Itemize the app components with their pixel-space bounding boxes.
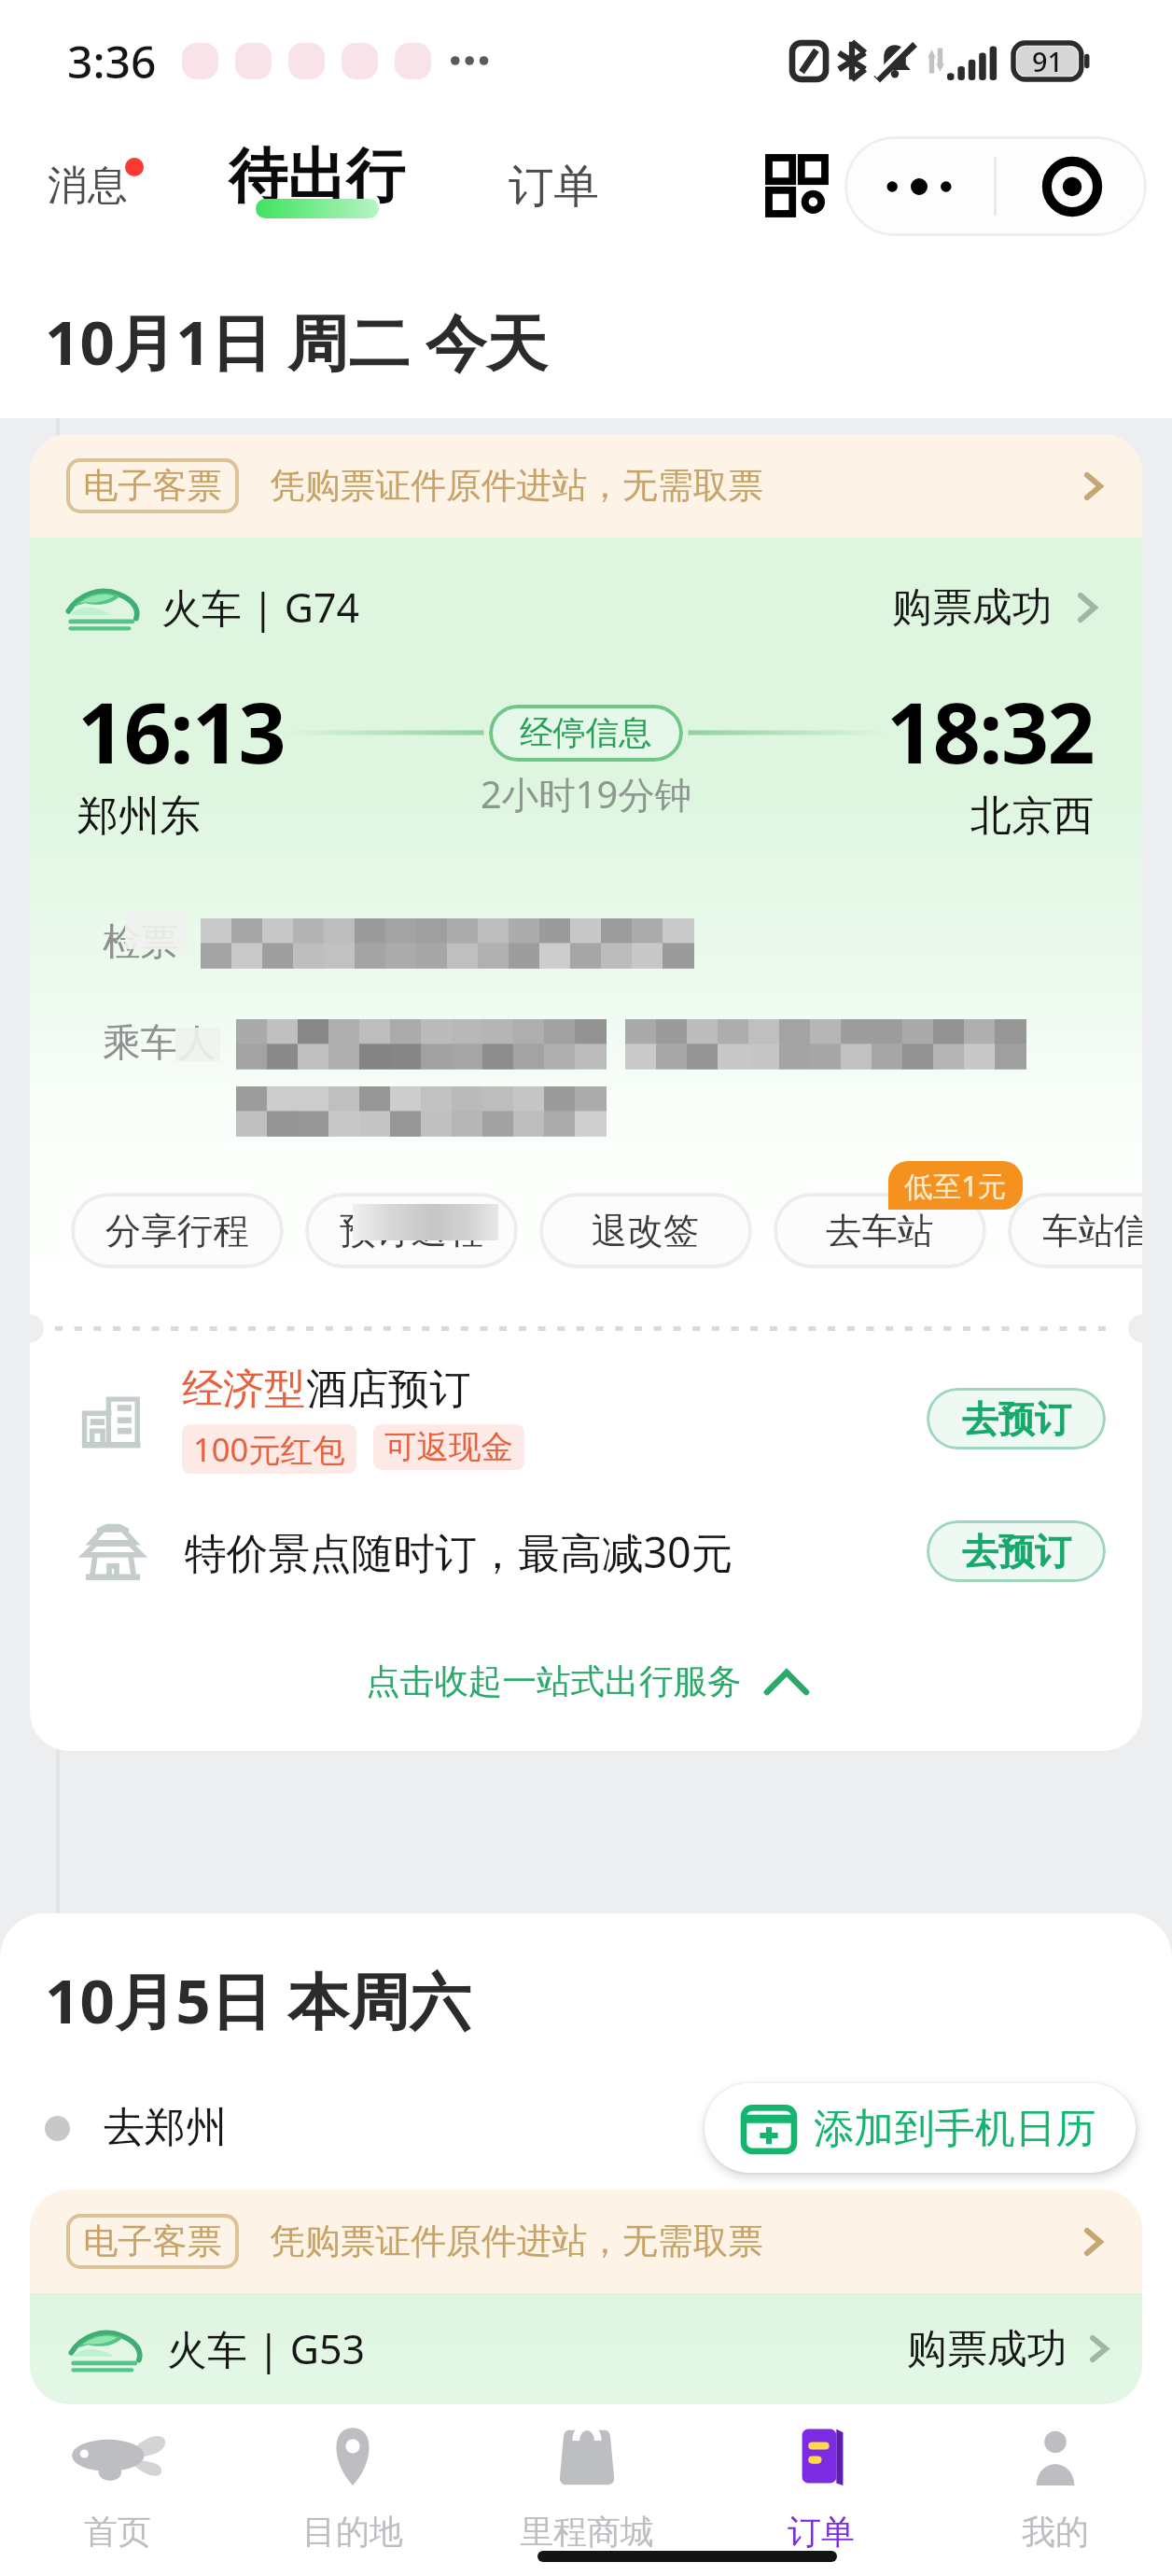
staticText: 经停信息	[520, 712, 652, 754]
staticText: 2小时19分钟	[481, 769, 692, 819]
staticText: 18:32	[886, 674, 1095, 788]
staticText: 91	[1032, 43, 1063, 79]
staticText: 电子客票	[83, 2219, 222, 2263]
staticText: 添加到手机日历	[814, 2103, 1096, 2153]
staticText: 检票	[103, 918, 178, 966]
staticText: 去郑州	[104, 2102, 228, 2154]
button[interactable]: 目的地	[235, 2427, 469, 2558]
staticText: 订单	[788, 2511, 855, 2553]
staticText: 100元红包	[193, 1427, 345, 1471]
staticText: 乘车人	[103, 1019, 216, 1067]
staticText: 可返现金	[384, 1427, 513, 1467]
staticText: 购票成功	[907, 2324, 1067, 2374]
staticText: 点击收起一站式出行服务	[366, 1660, 742, 1703]
staticText: 去车站	[826, 1209, 934, 1253]
staticText: 低至1元	[904, 1166, 1007, 1205]
button[interactable]: 退改签	[539, 1193, 752, 1268]
button[interactable]: Mini program list	[749, 138, 844, 233]
staticText: 火车 | G53	[167, 2321, 366, 2376]
staticText: 去预订	[962, 1529, 1071, 1575]
button[interactable]: 里程商城	[469, 2427, 704, 2558]
staticText: 电子客票	[83, 464, 222, 508]
button[interactable]: More options	[844, 136, 994, 236]
button[interactable]: 订单	[704, 2427, 938, 2558]
staticText: 16:13	[77, 674, 286, 788]
button[interactable]: 火车 | G74	[30, 580, 1142, 635]
button[interactable]: 我的	[938, 2427, 1172, 2558]
staticText: 10月5日 本周六	[45, 1958, 471, 2041]
staticText: 预订返程	[340, 1209, 483, 1253]
staticText: 消息	[48, 161, 128, 211]
staticText: 酒店预订	[306, 1364, 471, 1416]
button[interactable]: 消息	[42, 144, 133, 228]
staticText: 待出行	[229, 139, 405, 213]
staticText: 退改签	[592, 1209, 700, 1253]
staticText: 目的地	[302, 2511, 403, 2553]
staticText: 购票成功	[892, 582, 1053, 633]
staticText: 去预订	[962, 1396, 1071, 1442]
button[interactable]: 待出行	[223, 139, 411, 232]
button[interactable]: 添加到手机日历	[705, 2083, 1136, 2173]
button[interactable]: 特价景点随时订，最高减30元	[30, 1498, 1142, 1604]
button[interactable]: 订单	[500, 149, 608, 223]
button[interactable]: 电子客票	[30, 434, 1142, 538]
staticText: 3:36	[67, 31, 157, 91]
staticText: 郑州东	[77, 791, 202, 843]
button[interactable]: 经停信息	[489, 705, 683, 762]
staticText: 凭购票证件原件进站，无需取票	[270, 2219, 764, 2264]
button[interactable]: 首页	[0, 2427, 235, 2558]
staticText: 分享行程	[105, 1209, 249, 1253]
button[interactable]: 点击收起一站式出行服务	[30, 1604, 1142, 1751]
staticText: 经济型	[182, 1364, 306, 1416]
button[interactable]: 去预订	[927, 1520, 1106, 1582]
button[interactable]: 去预订	[927, 1388, 1106, 1449]
staticText: 特价景点随时订，最高减30元	[185, 1523, 927, 1580]
staticText: 车站信息	[1042, 1209, 1142, 1253]
staticText: 里程商城	[520, 2511, 654, 2553]
staticText: 北京西	[970, 791, 1095, 843]
staticText: 首页	[84, 2511, 151, 2553]
button[interactable]: 去车站	[774, 1193, 986, 1268]
button[interactable]: 经济型	[30, 1341, 1142, 1496]
staticText: 10月1日 周二 今天	[45, 300, 548, 383]
button[interactable]: 电子客票	[30, 2190, 1142, 2293]
staticText: 火车 | G74	[161, 580, 360, 635]
button[interactable]: 预订返程	[305, 1193, 518, 1268]
button[interactable]: 车站信息	[1008, 1193, 1142, 1268]
button[interactable]: 分享行程	[71, 1193, 284, 1268]
staticText: 凭购票证件原件进站，无需取票	[270, 464, 764, 509]
staticText: 我的	[1022, 2511, 1089, 2553]
button[interactable]: Close mini program	[997, 136, 1147, 236]
